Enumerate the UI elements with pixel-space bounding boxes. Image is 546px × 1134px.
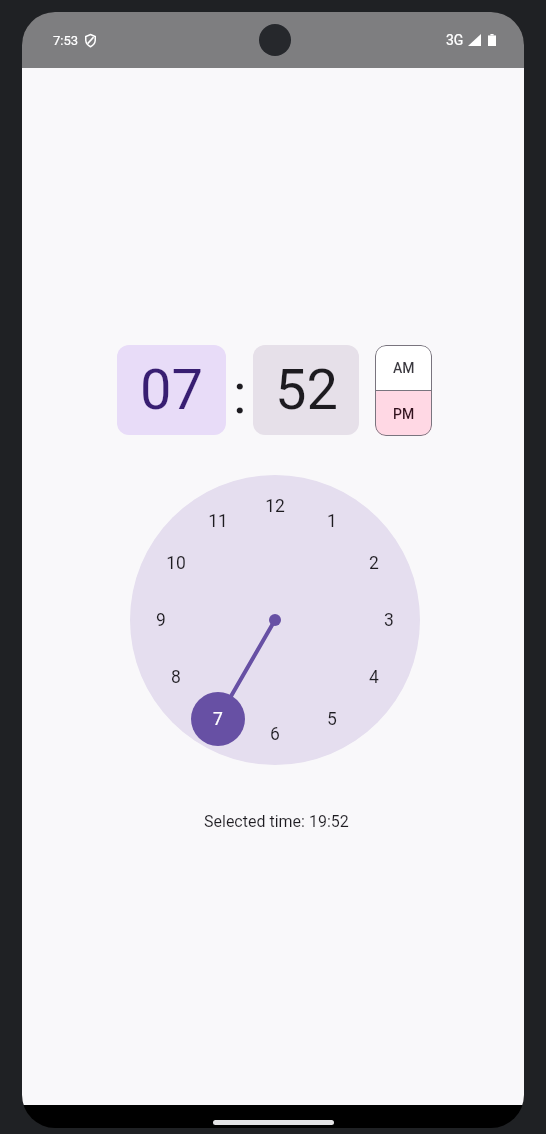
staticText: : [233, 361, 247, 427]
staticText: 07 [140, 357, 203, 423]
staticText: 52 [275, 357, 338, 423]
staticText: AM [393, 360, 415, 376]
button[interactable]: 1 [130, 475, 420, 765]
staticText: 12 [265, 496, 285, 517]
button[interactable]: AM [375, 345, 432, 390]
staticText: 4 [369, 667, 379, 688]
staticText: 7 [213, 709, 223, 730]
button[interactable]: 07 [117, 345, 226, 435]
staticText: 3 [384, 610, 394, 631]
staticText: 11 [208, 511, 228, 532]
staticText: 8 [171, 667, 181, 688]
staticText: 5 [327, 709, 337, 730]
staticText: 1 [327, 511, 337, 532]
button[interactable]: 52 [253, 345, 359, 435]
button[interactable]: PM [375, 391, 432, 436]
staticText: 3G [446, 32, 464, 48]
staticText: 6 [270, 724, 280, 745]
staticText: 10 [166, 553, 186, 574]
staticText: 7:53 [53, 33, 79, 48]
staticText: Selected time: 19:52 [204, 812, 349, 831]
staticText: 9 [156, 610, 166, 631]
staticText: PM [393, 406, 415, 422]
staticText: 2 [369, 553, 379, 574]
